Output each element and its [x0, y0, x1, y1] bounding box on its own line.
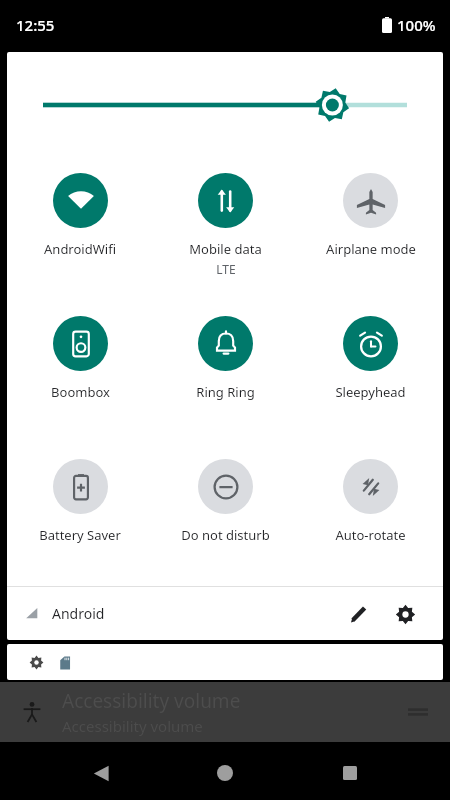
button[interactable]: Recents	[326, 749, 374, 797]
button[interactable]: Back	[77, 749, 125, 797]
button[interactable]: Do not disturb	[153, 443, 298, 586]
staticText: 100%	[397, 15, 436, 35]
staticText: LTE	[216, 261, 236, 277]
button[interactable]: Airplane mode	[298, 157, 443, 300]
button[interactable]	[7, 644, 443, 680]
staticText: Auto-rotate	[335, 526, 406, 544]
button[interactable]: Battery Saver	[7, 443, 153, 586]
button[interactable]: Android	[25, 604, 105, 623]
staticText: Do not disturb	[181, 526, 270, 544]
staticText: Sleepyhead	[335, 383, 406, 401]
button[interactable]: Boombox	[7, 300, 153, 443]
staticText: Mobile data	[189, 240, 262, 258]
staticText: 12:55	[16, 15, 55, 35]
staticText: Battery Saver	[39, 526, 121, 544]
button[interactable]	[7, 52, 443, 157]
button[interactable]: Mobile data	[153, 157, 298, 300]
button[interactable]: Auto-rotate	[298, 443, 443, 586]
button[interactable]: AndroidWifi	[7, 157, 153, 300]
button[interactable]: Home	[201, 749, 249, 797]
button[interactable]: Settings	[385, 594, 425, 634]
staticText: Airplane mode	[326, 240, 416, 258]
button[interactable]: Accessibility volume	[0, 682, 450, 742]
staticText: Accessibility volume	[62, 716, 203, 736]
staticText: Boombox	[51, 383, 110, 401]
staticText: Android	[52, 604, 105, 623]
staticText: Accessibility volume	[62, 688, 241, 714]
staticText: AndroidWifi	[44, 240, 116, 258]
staticText: Ring Ring	[196, 383, 255, 401]
button[interactable]: Ring Ring	[153, 300, 298, 443]
button[interactable]: Edit	[339, 594, 379, 634]
button[interactable]: Sleepyhead	[298, 300, 443, 443]
